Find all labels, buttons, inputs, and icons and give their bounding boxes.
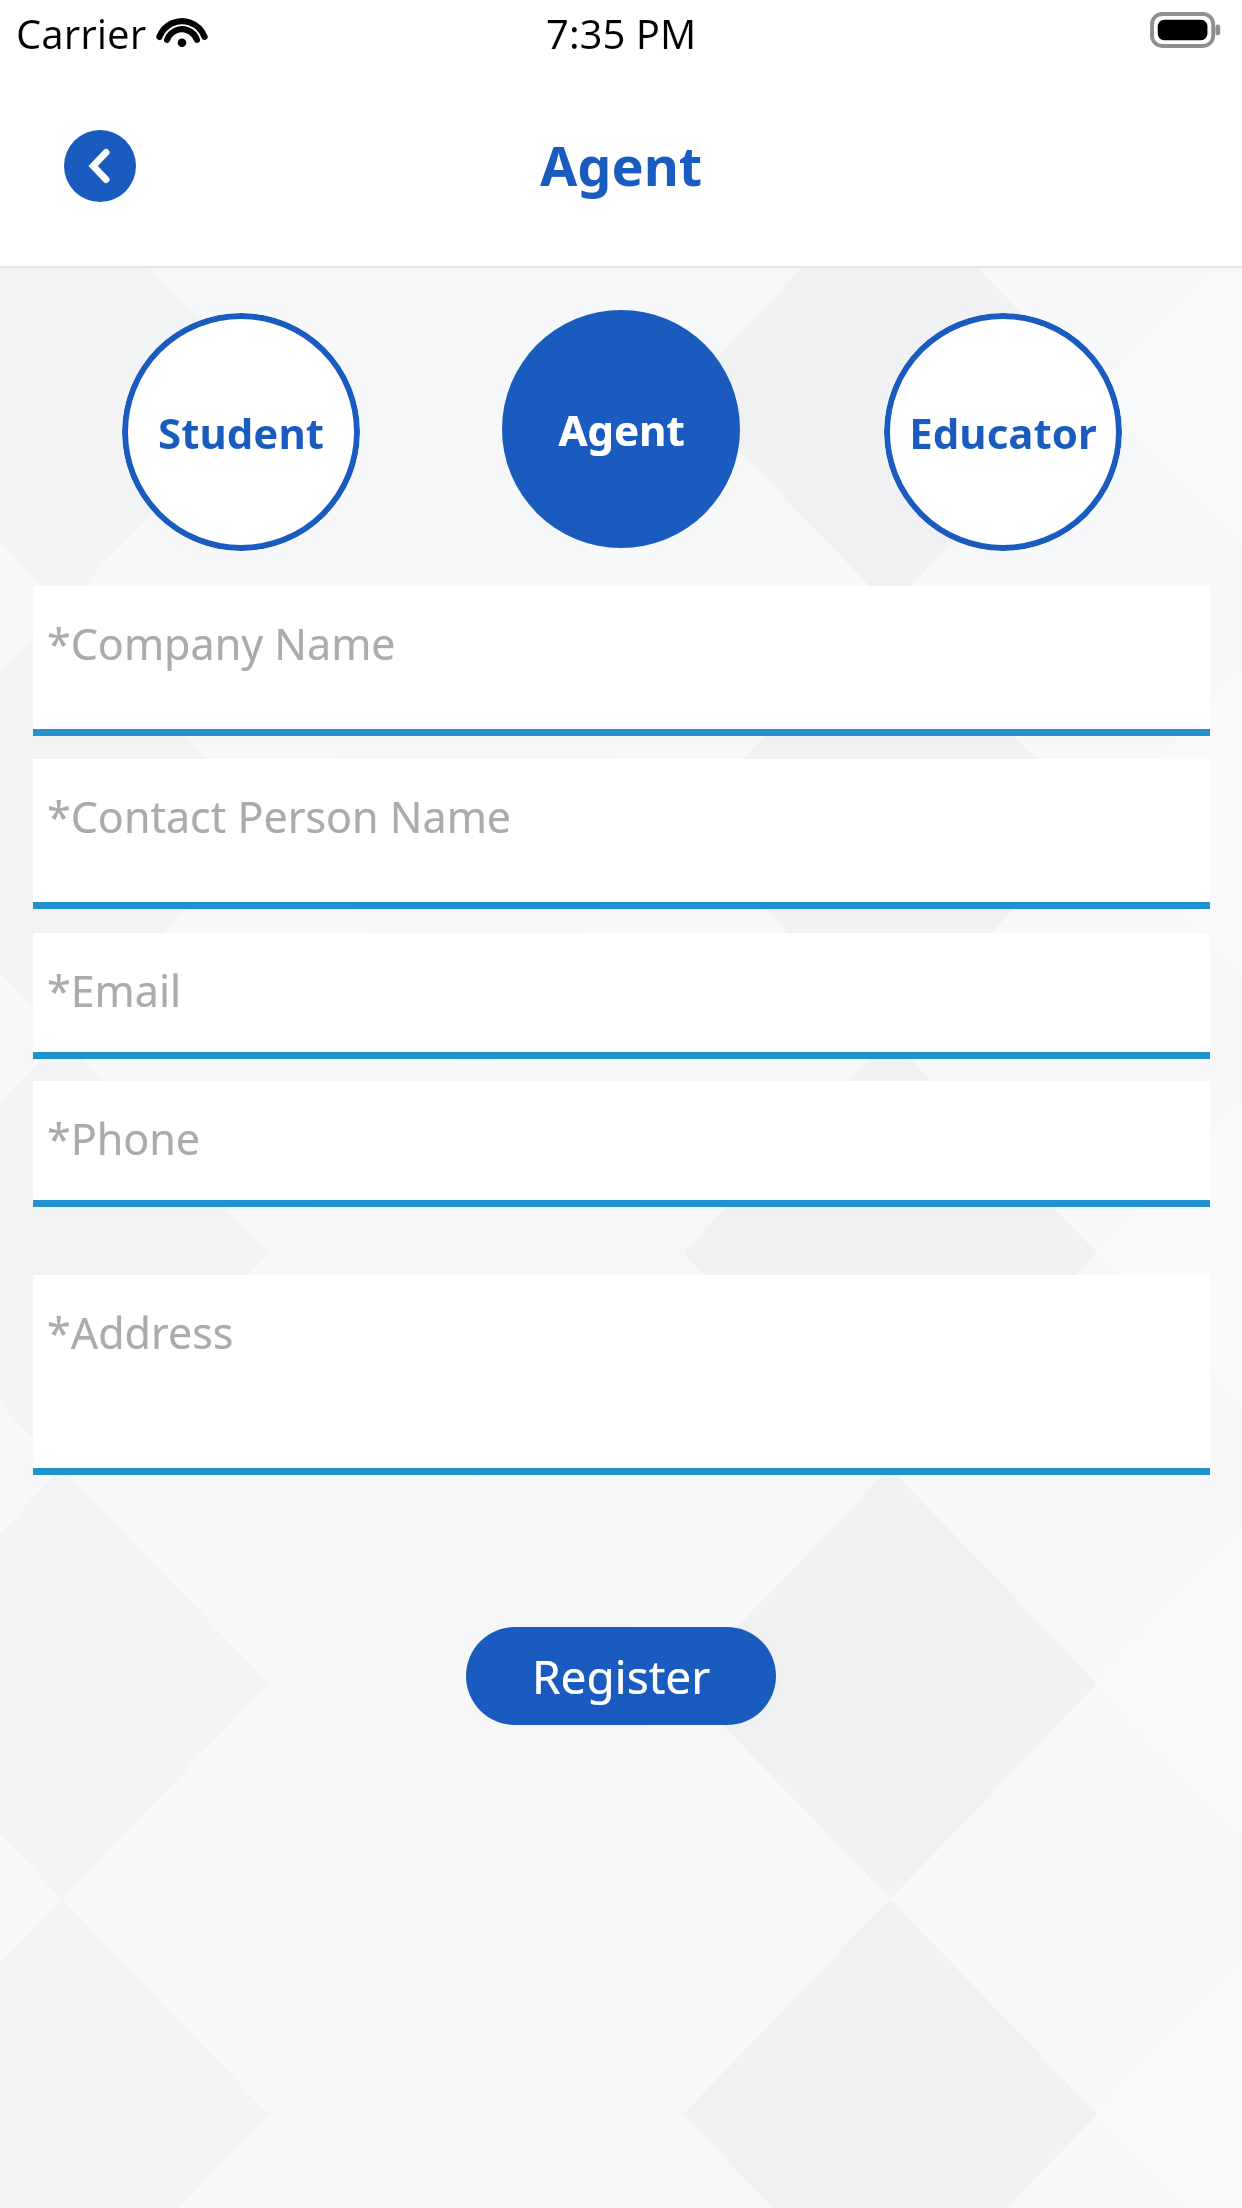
staticText: *Phone [47, 1109, 201, 1168]
button[interactable]: *Company Name [33, 586, 1210, 736]
staticText: Register [532, 1645, 711, 1708]
button[interactable]: Agent [502, 310, 740, 548]
button[interactable]: Educator [884, 313, 1122, 551]
staticText: 7:35 PM [546, 6, 697, 60]
staticText: Agent [540, 128, 703, 202]
staticText: *Contact Person Name [47, 787, 512, 846]
button[interactable]: *Address [33, 1275, 1210, 1475]
button[interactable]: Back [64, 130, 136, 202]
button[interactable]: *Phone [33, 1081, 1210, 1207]
staticText: *Company Name [47, 614, 396, 673]
button[interactable]: Register [466, 1627, 776, 1725]
staticText: Agent [558, 401, 685, 458]
button[interactable]: Student [122, 313, 360, 551]
staticText: Educator [909, 404, 1097, 461]
button[interactable]: *Email [33, 933, 1210, 1059]
staticText: *Email [47, 961, 182, 1020]
button[interactable]: *Contact Person Name [33, 759, 1210, 909]
staticText: *Address [47, 1303, 234, 1362]
staticText: Carrier [16, 6, 147, 60]
staticText: Student [158, 404, 324, 461]
